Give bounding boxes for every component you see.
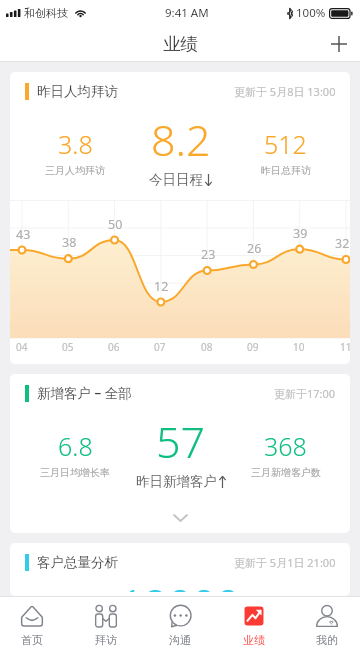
staticText: 10 [293,340,305,354]
staticText: 三月日均增长率 [40,466,110,479]
staticText: 12 [154,278,169,295]
staticText: 26 [247,240,262,257]
staticText: 100% [296,5,326,21]
staticText: 32 [335,235,350,252]
staticText: 9:41 AM [165,5,209,21]
staticText: 8.2 [151,110,211,169]
staticText: 业绩 [243,633,265,647]
staticText: 首页 [21,633,43,647]
staticText: 6.8 [58,429,93,463]
staticText: 我的 [316,633,338,647]
staticText: 三月新增客户数 [251,466,321,479]
staticText: 沟通 [169,633,191,647]
staticText: 昨日总拜访 [261,164,311,177]
staticText: 512 [264,127,307,161]
staticText: 43 [16,226,31,243]
button[interactable]: 沟通 [143,597,217,650]
staticText: 39 [293,225,308,242]
staticText: 57 [156,412,206,471]
staticText: 更新于 5月8日 13:00 [234,84,336,99]
button[interactable]: 业绩 [217,597,291,650]
staticText: 昨日新增客户 [136,473,217,490]
staticText: 38 [62,234,77,251]
button[interactable]: Add [318,26,360,62]
staticText: 更新于17:00 [274,386,336,401]
staticText: 08 [201,340,213,354]
button[interactable]: 我的 [290,597,360,650]
staticText: 昨日人均拜访 [37,83,118,100]
staticText: 368 [264,429,307,463]
staticText: 11 [340,340,350,354]
button[interactable]: 拜访 [69,597,143,650]
staticText: 3.8 [58,127,93,161]
staticText: 拜访 [95,633,117,647]
staticText: 今日日程 [149,171,203,188]
staticText: 三月人均拜访 [45,164,105,177]
staticText: 09 [247,340,259,354]
staticText: 新增客户 – 全部 [37,384,132,402]
staticText: 更新于 5月1日 21:00 [234,555,336,570]
staticText: 05 [62,340,74,354]
staticText: 04 [16,340,28,354]
staticText: 23 [201,246,216,263]
staticText: 业绩 [163,33,198,55]
staticText: 客户总量分析 [37,554,118,571]
staticText: 50 [108,216,123,233]
staticText: 12000 [120,575,240,592]
staticText: 和创科技 [24,6,68,20]
button[interactable]: 首页 [0,597,69,650]
staticText: 06 [108,340,120,354]
staticText: 07 [154,340,166,354]
button[interactable]: Expand [10,502,350,533]
